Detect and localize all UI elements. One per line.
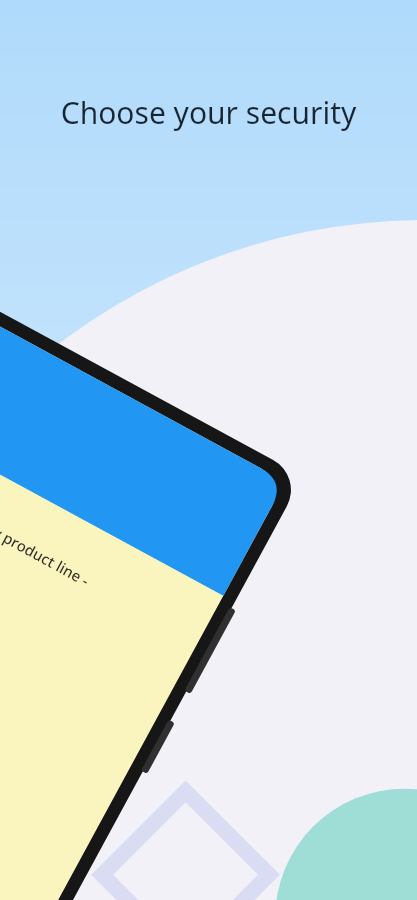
button[interactable]: Choose your security bbox=[0, 92, 417, 133]
button[interactable]: Secure note preview bbox=[0, 600, 417, 900]
